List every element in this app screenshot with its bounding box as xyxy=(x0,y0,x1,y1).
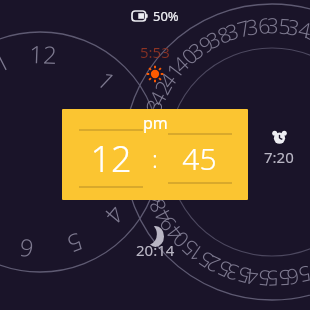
staticText: 12 xyxy=(90,134,132,183)
button[interactable]: Moon phase xyxy=(125,226,185,260)
button[interactable]: 5:53 xyxy=(127,42,183,82)
other: Alarm xyxy=(271,128,288,145)
staticText: 45 xyxy=(182,138,217,179)
other: Sunrise xyxy=(147,66,163,82)
button[interactable]: Alarm xyxy=(253,128,305,167)
staticText: 7:20 xyxy=(264,147,294,167)
button[interactable]: pm xyxy=(62,109,248,200)
staticText: 5:53 xyxy=(140,42,170,62)
button[interactable]: 45 xyxy=(163,133,236,184)
button[interactable]: pm xyxy=(135,111,176,135)
staticText: 50% xyxy=(153,7,179,25)
other: Moon phase xyxy=(147,226,164,237)
button[interactable]: 12 xyxy=(74,129,147,188)
other: Battery 50 percent xyxy=(132,11,148,21)
button[interactable]: Battery 50 percent xyxy=(128,5,183,27)
staticText: : xyxy=(152,142,158,175)
staticText: pm xyxy=(143,112,168,134)
staticText: 20:14 xyxy=(136,240,175,260)
